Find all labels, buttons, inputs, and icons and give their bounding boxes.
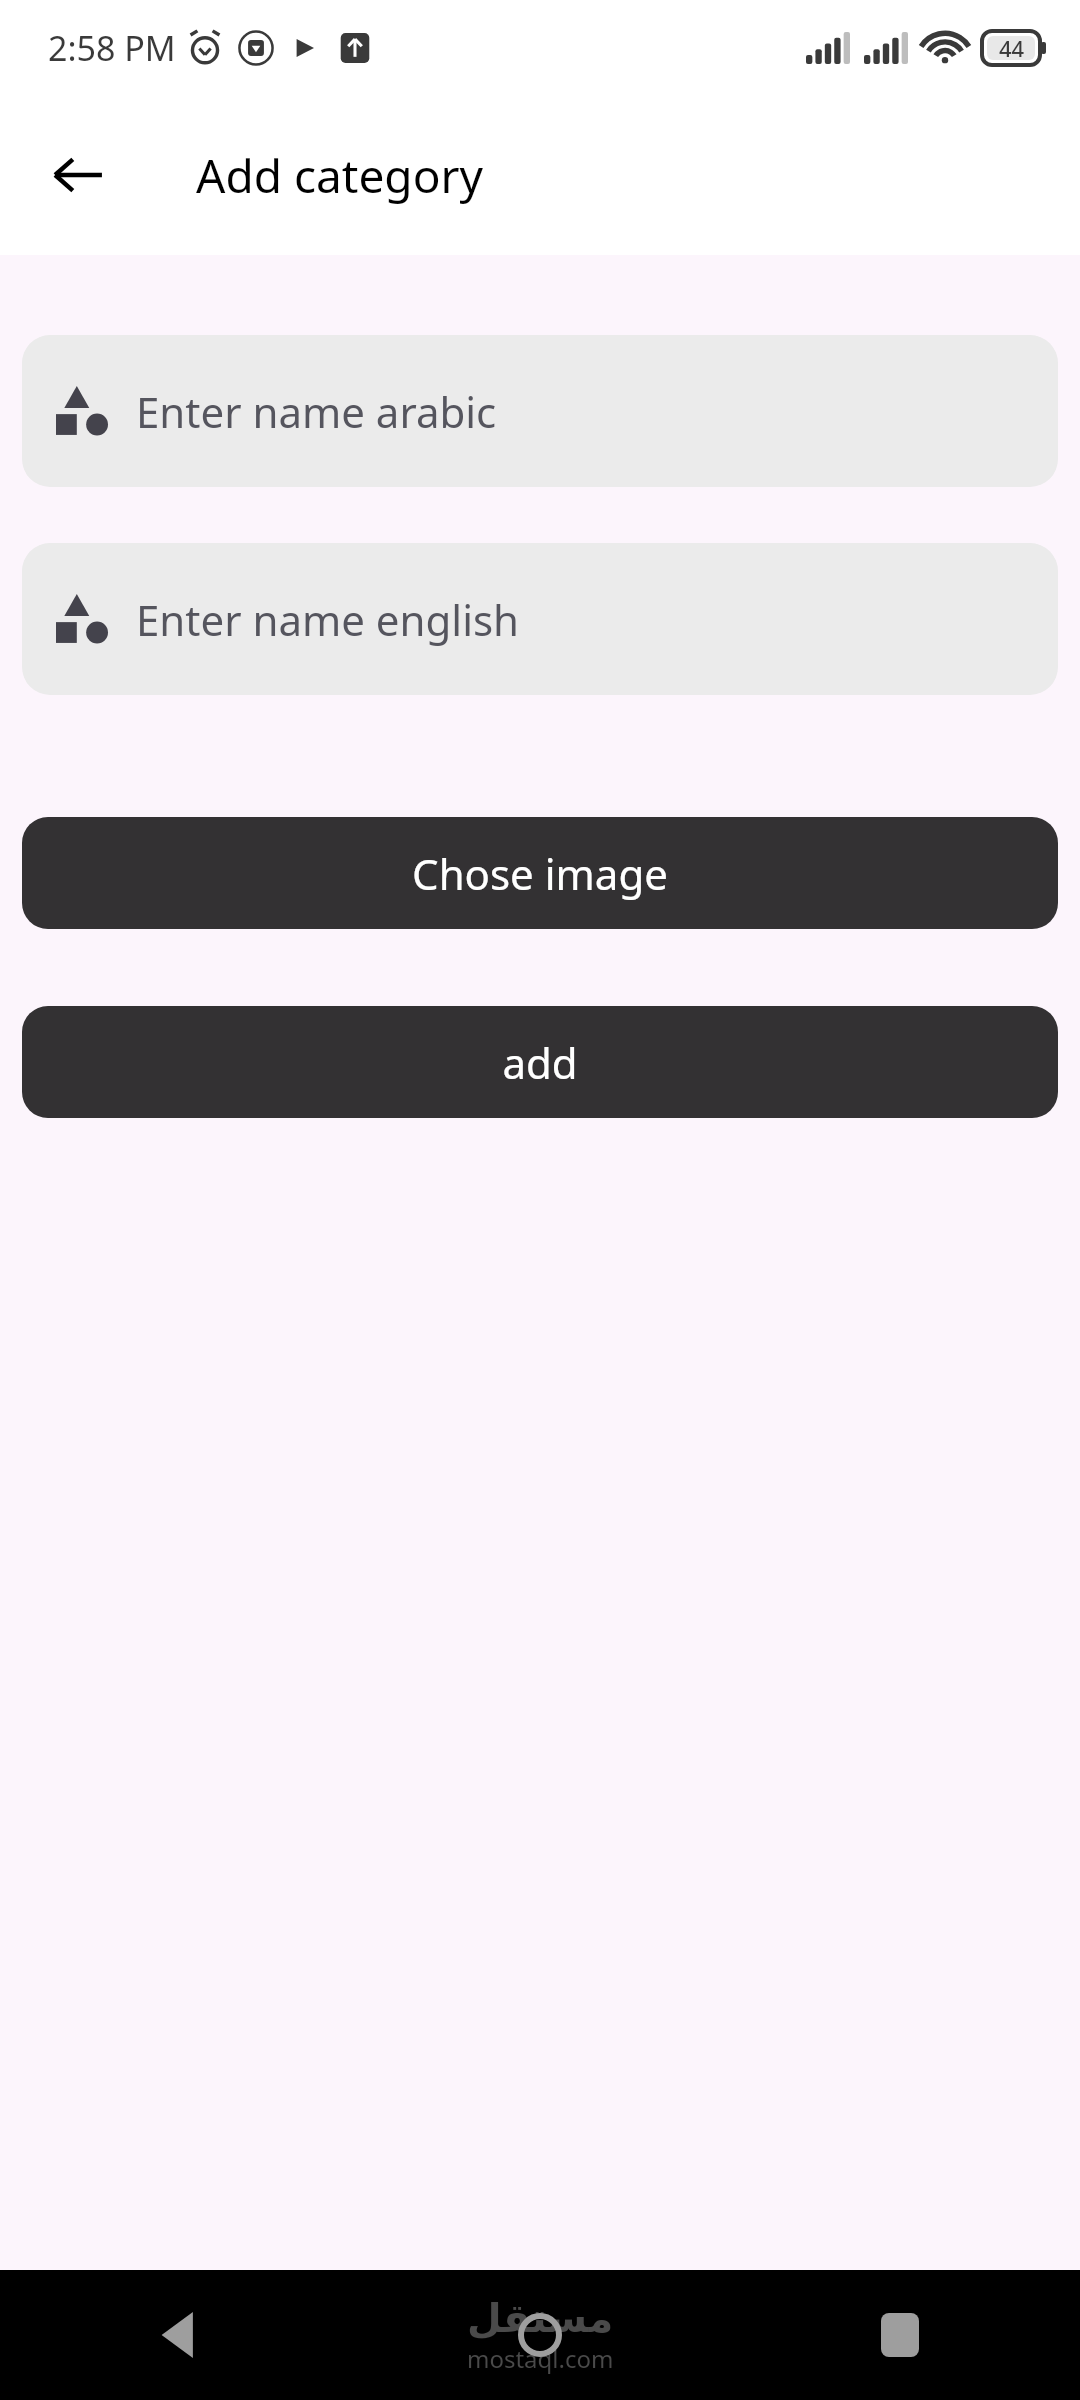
staticText: مستقل [467, 2295, 614, 2342]
button[interactable]: add [22, 1006, 1058, 1118]
staticText: Enter name arabic [136, 383, 497, 440]
staticText: mostaql.com [467, 2342, 614, 2375]
staticText: Enter name english [136, 591, 520, 648]
button[interactable]: Home [485, 2280, 595, 2390]
button[interactable]: Chose image [22, 817, 1058, 929]
staticText: Add category [196, 144, 483, 207]
staticText: add [502, 1034, 578, 1091]
button[interactable]: Recent apps [845, 2280, 955, 2390]
button[interactable]: Enter name arabic [22, 335, 1058, 487]
staticText: 44 [999, 33, 1025, 63]
staticText: Chose image [412, 845, 668, 902]
staticText: 2:58 PM [48, 25, 176, 71]
button[interactable]: Back [125, 2280, 235, 2390]
button[interactable]: Enter name english [22, 543, 1058, 695]
button[interactable]: Back [40, 137, 116, 213]
